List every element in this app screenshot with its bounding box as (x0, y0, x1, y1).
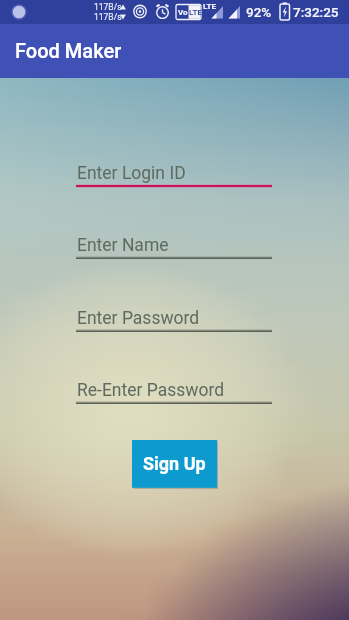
staticText: 117B/s (94, 2, 122, 12)
staticText: LTE (189, 8, 202, 17)
staticText: 117B/s (94, 12, 122, 22)
staticText: Enter Login ID (77, 163, 186, 184)
staticText: Enter Password (77, 308, 200, 329)
staticText: Re-Enter Password (77, 380, 225, 401)
button[interactable]: Enter Login ID (76, 158, 272, 188)
staticText: LTE (203, 2, 216, 11)
staticText: 92% (246, 4, 272, 20)
staticText: Food Maker (15, 39, 122, 62)
button[interactable]: Enter Password (76, 303, 272, 333)
staticText: Sign Up (143, 453, 206, 474)
button[interactable]: Sign Up (132, 440, 218, 489)
button[interactable]: Enter Name (76, 230, 272, 260)
staticText: Enter Name (77, 235, 169, 256)
button[interactable]: Re-Enter Password (76, 375, 272, 405)
staticText: Vo (178, 8, 188, 17)
staticText: 7:32:25 (293, 4, 339, 20)
